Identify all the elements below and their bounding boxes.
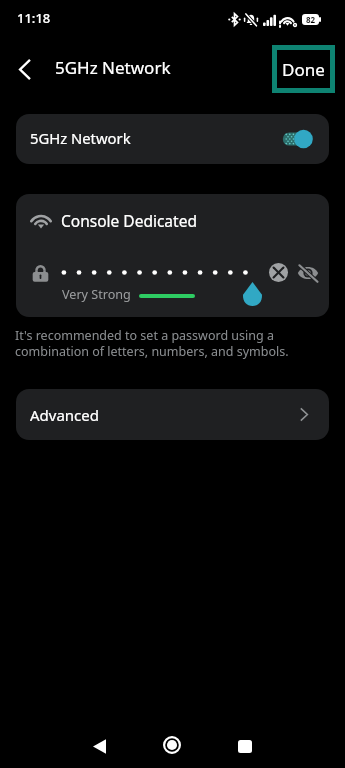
button[interactable]: Recent apps [223, 724, 267, 768]
button[interactable]: Back [77, 724, 121, 768]
button[interactable]: 5GHz Network [16, 114, 329, 164]
button[interactable]: Advanced [16, 389, 329, 440]
staticText: 82 [306, 14, 316, 25]
staticText: Very Strong [62, 286, 131, 303]
button[interactable]: Show password [291, 256, 324, 289]
button[interactable]: Done [272, 45, 335, 93]
button[interactable]: Back [5, 50, 43, 88]
staticText: 11:18 [17, 9, 51, 27]
staticText: Done [282, 58, 325, 81]
staticText: 5GHz Network [30, 128, 131, 148]
staticText: It's recommended to set a password using… [15, 327, 289, 360]
staticText: Console Dedicated [61, 210, 197, 231]
button[interactable]: Home [150, 723, 194, 767]
button[interactable]: Clear password [262, 256, 295, 289]
staticText: 5GHz Network [55, 56, 171, 79]
staticText: Advanced [30, 405, 100, 425]
